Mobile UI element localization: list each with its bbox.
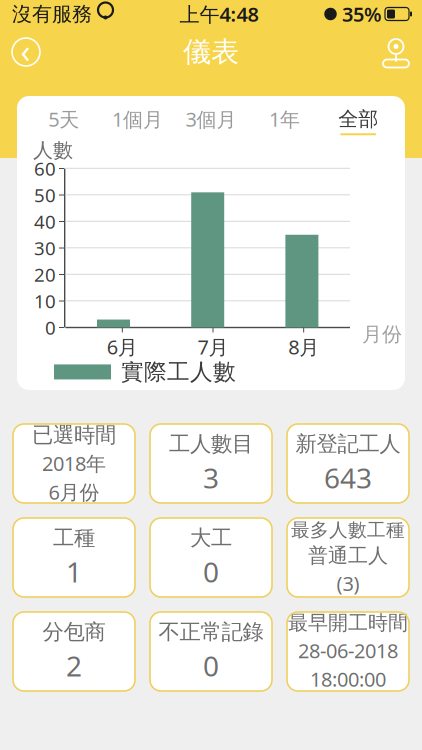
staticText: 普通工人	[308, 543, 388, 568]
staticText: 1年	[269, 106, 300, 132]
staticText: 3個月	[185, 106, 236, 132]
staticText: 已選時間	[32, 422, 116, 448]
staticText: 人數	[33, 138, 73, 162]
button[interactable]: 工種	[13, 518, 135, 597]
staticText: 0	[203, 553, 219, 590]
staticText: 2	[66, 647, 82, 684]
staticText: 月份	[362, 322, 402, 346]
staticText: 7月	[197, 333, 228, 360]
staticText: ‹	[20, 29, 30, 72]
staticText: 643	[324, 459, 372, 496]
staticText: 新登記工人	[295, 431, 400, 457]
staticText: 20	[34, 262, 56, 287]
staticText: 8月	[288, 333, 319, 360]
staticText: 0	[203, 647, 219, 684]
staticText: 大工	[190, 525, 232, 551]
button[interactable]: 3個月	[174, 104, 248, 138]
staticText: 1個月	[112, 106, 163, 132]
staticText: 工種	[53, 525, 95, 551]
staticText: 工人數目	[169, 431, 253, 457]
staticText: 沒有服務	[12, 2, 92, 26]
staticText: 上午4:48	[179, 1, 258, 27]
staticText: 3	[203, 459, 219, 496]
staticText: 1	[66, 553, 82, 590]
button[interactable]: 新登記工人	[287, 424, 409, 503]
button[interactable]: 5天	[27, 104, 101, 138]
staticText: 18:00:00	[310, 666, 386, 692]
button[interactable]: 不正常記錄	[150, 612, 272, 691]
staticText: 10	[34, 289, 56, 313]
staticText: 最早開工時間	[288, 611, 408, 635]
button[interactable]: 最早開工時間	[287, 612, 409, 691]
staticText: 40	[34, 209, 56, 234]
button[interactable]: 最多人數工種	[287, 518, 409, 597]
button[interactable]: 分包商	[13, 612, 135, 691]
staticText: 35%	[337, 1, 382, 27]
button[interactable]: 1個月	[101, 104, 174, 138]
staticText: 6月	[107, 333, 138, 360]
button[interactable]: 1年	[248, 104, 321, 138]
staticText: 分包商	[42, 619, 105, 645]
staticText: 30	[34, 236, 56, 260]
staticText: 6月份	[48, 479, 99, 505]
staticText: 2018年	[42, 450, 106, 477]
staticText: 5天	[48, 106, 79, 132]
staticText: 實際工人數	[121, 358, 236, 386]
staticText: 60	[34, 156, 56, 181]
staticText: 28-06-2018	[298, 637, 398, 664]
staticText: 儀表	[183, 35, 239, 69]
button[interactable]: 大工	[150, 518, 272, 597]
staticText: 0	[45, 315, 56, 340]
button[interactable]: 已選時間	[13, 424, 135, 503]
button[interactable]: 工人數目	[150, 424, 272, 503]
staticText: 不正常記錄	[158, 619, 263, 645]
staticText: 全部	[338, 107, 378, 131]
staticText: 50	[34, 183, 56, 207]
button[interactable]: 全部	[321, 104, 395, 138]
button[interactable]: Map	[370, 29, 422, 75]
staticText: 最多人數工種	[291, 518, 405, 541]
staticText: (3)	[336, 570, 359, 597]
button[interactable]: Back	[0, 29, 52, 75]
